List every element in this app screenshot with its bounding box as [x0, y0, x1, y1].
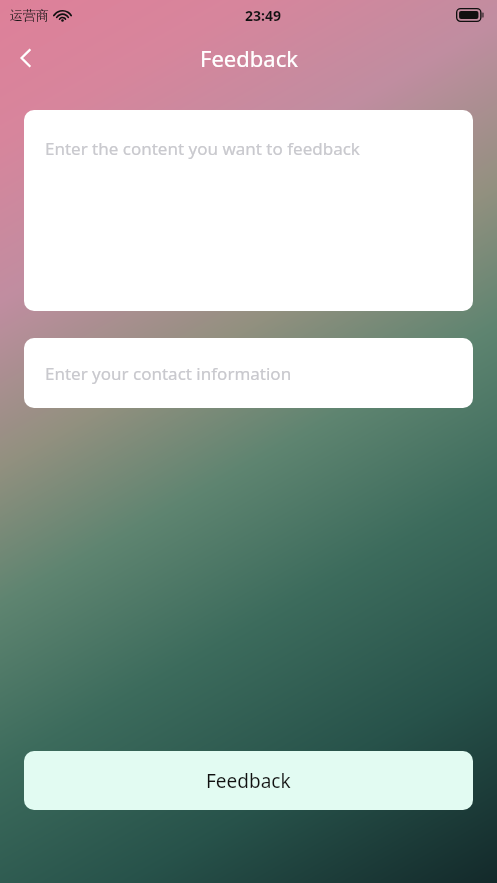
button[interactable]: Enter your contact information	[24, 338, 473, 408]
button[interactable]: Feedback	[24, 751, 473, 810]
staticText: 23:49	[245, 6, 281, 25]
staticText: 运营商	[10, 7, 49, 23]
button[interactable]: Back	[0, 32, 52, 84]
button[interactable]: Enter the content you want to feedback	[24, 110, 473, 311]
staticText: Feedback	[200, 43, 298, 73]
staticText: Feedback	[206, 768, 291, 794]
staticText: Enter the content you want to feedback	[45, 137, 360, 160]
staticText: Enter your contact information	[45, 362, 292, 385]
